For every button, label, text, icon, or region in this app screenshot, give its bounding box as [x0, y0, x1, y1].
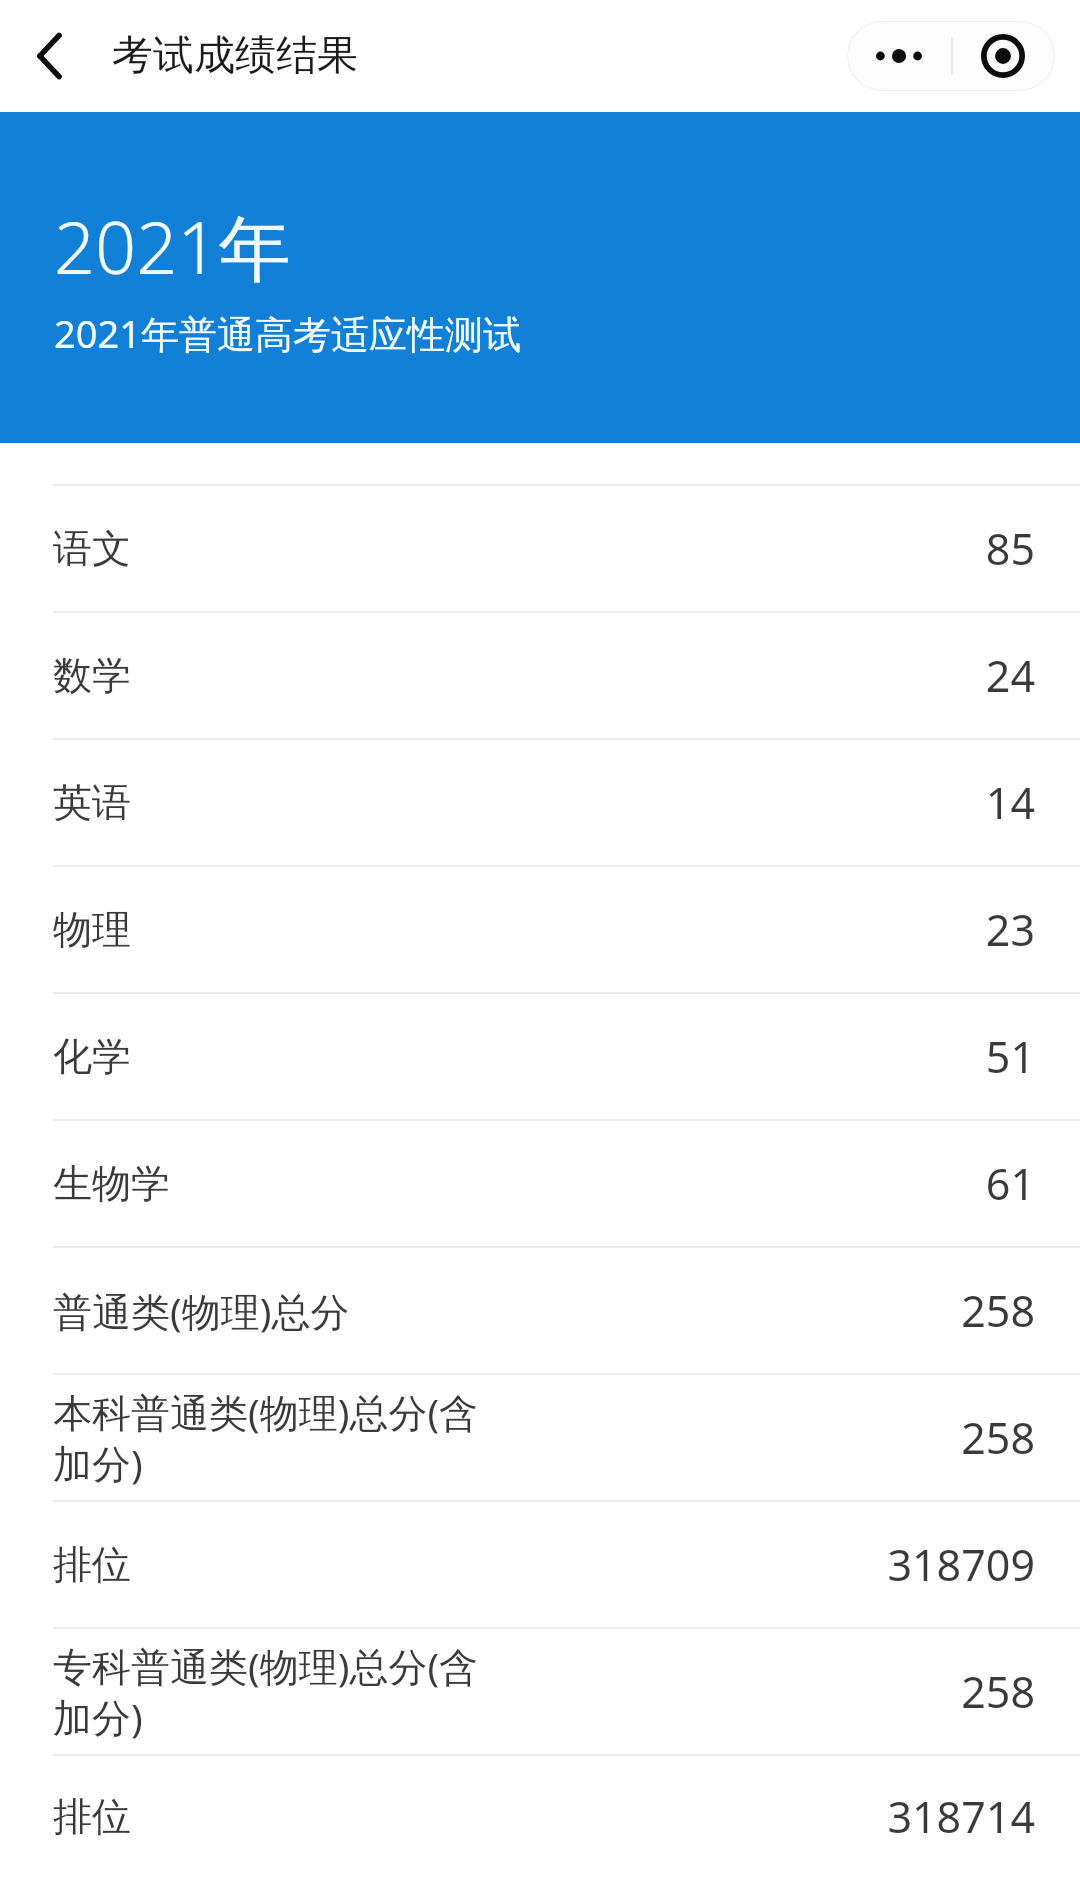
staticText: 23: [985, 900, 1035, 959]
button[interactable]: 排位: [0, 1756, 1080, 1877]
staticText: 24: [985, 646, 1035, 705]
button[interactable]: 数学: [0, 613, 1080, 738]
staticText: 排位: [53, 1540, 871, 1589]
staticText: 考试成绩结果: [112, 30, 358, 82]
button[interactable]: 专科普通类(物理)总分(含 加分): [0, 1629, 1080, 1754]
staticText: 318709: [887, 1535, 1035, 1594]
staticText: 专科普通类(物理)总分(含 加分): [53, 1639, 945, 1744]
button[interactable]: 化学: [0, 994, 1080, 1119]
staticText: 318714: [887, 1787, 1035, 1846]
button[interactable]: Close mini program: [951, 21, 1055, 91]
staticText: 258: [961, 1281, 1035, 1340]
staticText: 258: [961, 1408, 1035, 1467]
staticText: 数学: [53, 651, 969, 700]
staticText: 51: [985, 1027, 1035, 1086]
button[interactable]: Back: [16, 23, 82, 89]
button[interactable]: 物理: [0, 867, 1080, 992]
staticText: 2021年: [54, 197, 291, 295]
button[interactable]: More options: [847, 21, 951, 91]
staticText: 258: [961, 1662, 1035, 1721]
staticText: 生物学: [53, 1159, 969, 1208]
staticText: 物理: [53, 905, 969, 954]
staticText: 排位: [53, 1792, 871, 1841]
staticText: 本科普通类(物理)总分(含 加分): [53, 1385, 945, 1490]
staticText: 61: [985, 1154, 1035, 1213]
button[interactable]: 英语: [0, 740, 1080, 865]
button[interactable]: 普通类(物理)总分: [0, 1248, 1080, 1373]
staticText: 化学: [53, 1032, 969, 1081]
staticText: 2021年普通高考适应性测试: [54, 307, 521, 359]
staticText: 英语: [53, 778, 969, 827]
staticText: 85: [985, 519, 1035, 578]
button[interactable]: 语文: [0, 486, 1080, 611]
button[interactable]: 排位: [0, 1502, 1080, 1627]
staticText: 语文: [53, 524, 969, 573]
staticText: 普通类(物理)总分: [53, 1284, 945, 1337]
button[interactable]: 本科普通类(物理)总分(含 加分): [0, 1375, 1080, 1500]
button[interactable]: 生物学: [0, 1121, 1080, 1246]
staticText: 14: [985, 773, 1035, 832]
